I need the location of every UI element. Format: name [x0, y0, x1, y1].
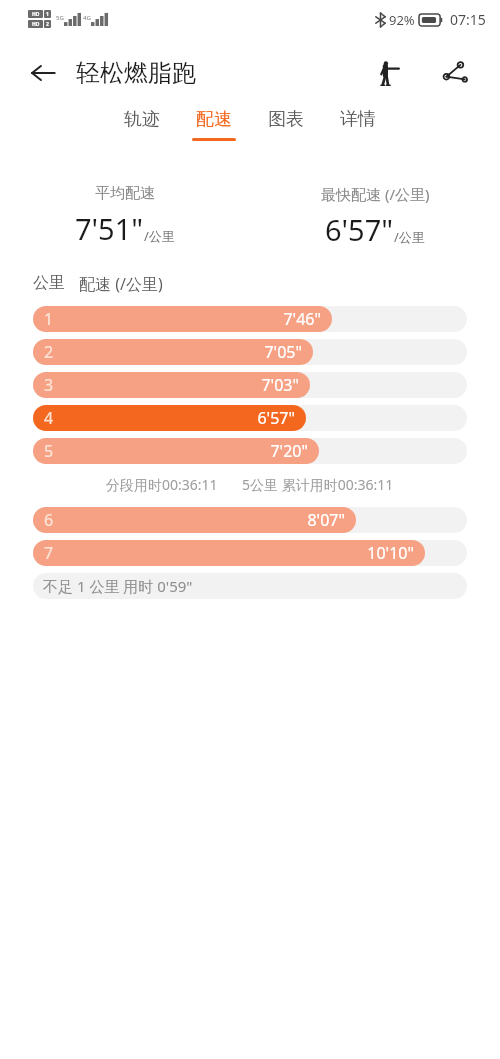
button[interactable]: Share — [432, 51, 476, 95]
staticText: 6'57" — [325, 210, 394, 249]
staticText: 轨迹 — [124, 108, 160, 131]
button[interactable]: 轨迹 — [120, 108, 164, 141]
staticText: 5 — [44, 440, 54, 462]
button[interactable]: 配速 — [192, 108, 236, 141]
staticText: 图表 — [268, 108, 304, 131]
staticText: 4G — [83, 14, 91, 22]
staticText: 配速 — [196, 108, 232, 131]
button[interactable]: 2 — [33, 335, 467, 368]
button[interactable]: 6 — [33, 503, 467, 536]
button[interactable]: 4 — [33, 401, 467, 434]
button[interactable]: 7 — [33, 536, 467, 569]
button[interactable]: 3 — [33, 368, 467, 401]
staticText: /公里 — [394, 228, 425, 246]
staticText: 1 — [44, 308, 54, 330]
staticText: 6 — [44, 509, 54, 531]
button[interactable]: Run detail — [366, 51, 410, 95]
button[interactable]: 5 — [33, 434, 467, 467]
staticText: HD — [32, 11, 40, 18]
staticText: 7'03" — [261, 374, 299, 396]
staticText: 公里 — [33, 273, 65, 293]
staticText: 5G — [56, 14, 64, 22]
staticText: 平均配速 — [95, 184, 155, 203]
staticText: 6'57" — [257, 407, 295, 429]
button[interactable]: 图表 — [264, 108, 308, 141]
button[interactable]: Back — [22, 52, 64, 94]
staticText: 7'05" — [264, 341, 302, 363]
staticText: 5公里 累计用时00:36:11 — [242, 475, 394, 494]
button[interactable]: 1 — [33, 302, 467, 335]
staticText: 3 — [44, 374, 54, 396]
staticText: 4 — [44, 407, 54, 429]
staticText: 07:15 — [450, 10, 486, 29]
staticText: 7'46" — [283, 308, 321, 330]
staticText: 最快配速 (/公里) — [321, 184, 430, 204]
staticText: 2 — [44, 341, 54, 363]
staticText: 分段用时00:36:11 — [106, 475, 218, 494]
staticText: 轻松燃脂跑 — [76, 58, 196, 88]
staticText: 2 — [46, 21, 49, 28]
button[interactable]: 详情 — [336, 108, 380, 141]
staticText: 7'51" — [75, 209, 144, 248]
staticText: 1 — [46, 11, 49, 18]
staticText: 10'10" — [367, 542, 414, 564]
staticText: 8'07" — [307, 509, 345, 531]
staticText: HD — [32, 21, 40, 28]
staticText: 92% — [389, 11, 415, 29]
staticText: 详情 — [340, 108, 376, 131]
staticText: 7'20" — [270, 440, 308, 462]
staticText: /公里 — [144, 227, 175, 245]
button[interactable]: 不足 1 公里 用时 0'59" — [33, 573, 467, 599]
staticText: 不足 1 公里 用时 0'59" — [43, 576, 193, 596]
staticText: 配速 (/公里) — [79, 273, 163, 295]
staticText: 7 — [44, 542, 54, 564]
